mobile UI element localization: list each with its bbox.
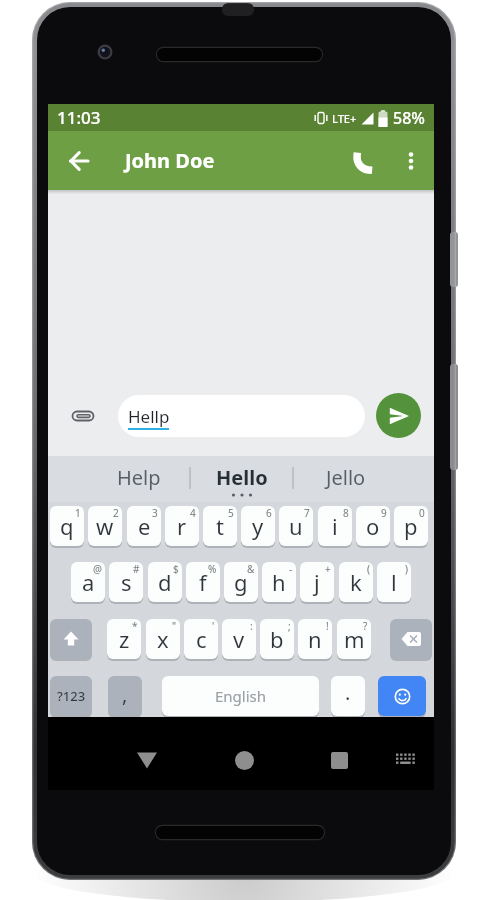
staticText: h bbox=[272, 567, 286, 597]
button[interactable]: p bbox=[394, 506, 428, 546]
staticText: ?123 bbox=[57, 687, 86, 705]
button[interactable] bbox=[123, 740, 171, 780]
staticText: i bbox=[332, 511, 338, 541]
button[interactable]: c bbox=[184, 619, 218, 659]
staticText: n bbox=[308, 624, 322, 654]
staticText: v bbox=[233, 624, 245, 654]
staticText: Hello bbox=[216, 464, 268, 491]
button[interactable]: e bbox=[127, 506, 161, 546]
button[interactable] bbox=[48, 394, 118, 438]
staticText: m bbox=[344, 624, 365, 654]
staticText: $ bbox=[173, 562, 179, 576]
button[interactable]: Jello bbox=[301, 456, 391, 498]
button[interactable]: ?123 bbox=[50, 676, 92, 716]
button[interactable]: Help bbox=[94, 456, 184, 498]
button[interactable]: j bbox=[300, 562, 334, 602]
staticText: q bbox=[60, 511, 74, 541]
button[interactable]: x bbox=[146, 619, 180, 659]
staticText: @ bbox=[93, 562, 102, 576]
staticText: c bbox=[196, 624, 207, 654]
staticText: 0 bbox=[419, 506, 425, 520]
button[interactable]: f bbox=[186, 562, 220, 602]
button[interactable]: k bbox=[339, 562, 373, 602]
staticText: z bbox=[119, 624, 130, 654]
staticText: 58% bbox=[393, 107, 425, 129]
button[interactable]: h bbox=[262, 562, 296, 602]
button[interactable] bbox=[50, 619, 92, 659]
button[interactable]: n bbox=[298, 619, 332, 659]
staticText: g bbox=[234, 567, 248, 597]
button[interactable] bbox=[378, 676, 426, 716]
button[interactable]: , bbox=[108, 676, 142, 716]
button[interactable]: m bbox=[337, 619, 371, 659]
button[interactable]: r bbox=[165, 506, 199, 546]
staticText: p bbox=[404, 511, 418, 541]
button[interactable]: v bbox=[222, 619, 256, 659]
button[interactable] bbox=[390, 619, 432, 659]
button[interactable]: d bbox=[148, 562, 182, 602]
button[interactable]: o bbox=[356, 506, 390, 546]
button[interactable] bbox=[344, 131, 388, 190]
button[interactable] bbox=[388, 131, 434, 190]
staticText: w bbox=[96, 511, 114, 541]
staticText: ! bbox=[326, 619, 329, 633]
staticText: # bbox=[133, 562, 140, 576]
staticText: : bbox=[250, 619, 253, 633]
staticText: a bbox=[82, 567, 95, 597]
button[interactable]: q bbox=[50, 506, 84, 546]
button[interactable]: English bbox=[162, 676, 319, 716]
button[interactable]: z bbox=[107, 619, 141, 659]
staticText: r bbox=[177, 511, 187, 541]
button[interactable] bbox=[220, 740, 268, 780]
staticText: b bbox=[270, 624, 284, 654]
staticText: y bbox=[252, 511, 264, 541]
button[interactable] bbox=[376, 393, 421, 438]
staticText: . bbox=[345, 679, 351, 706]
staticText: - bbox=[289, 562, 293, 576]
button[interactable] bbox=[315, 740, 363, 780]
staticText: j bbox=[314, 567, 320, 597]
staticText: Jello bbox=[326, 464, 366, 491]
button[interactable]: . bbox=[331, 676, 365, 716]
button[interactable] bbox=[391, 746, 419, 774]
button[interactable]: g bbox=[224, 562, 258, 602]
staticText: * bbox=[132, 619, 138, 633]
staticText: d bbox=[158, 567, 172, 597]
button[interactable] bbox=[48, 131, 110, 190]
staticText: l bbox=[391, 567, 397, 597]
staticText: u bbox=[289, 511, 303, 541]
staticText: 8 bbox=[343, 506, 349, 520]
staticText: John Doe bbox=[125, 147, 215, 174]
staticText: e bbox=[138, 511, 151, 541]
staticText: x bbox=[157, 624, 169, 654]
button[interactable]: w bbox=[88, 506, 122, 546]
button[interactable]: y bbox=[241, 506, 275, 546]
staticText: + bbox=[325, 562, 331, 576]
button[interactable]: l bbox=[377, 562, 411, 602]
staticText: % bbox=[208, 562, 217, 576]
staticText: 6 bbox=[266, 506, 272, 520]
staticText: s bbox=[121, 567, 132, 597]
button[interactable]: s bbox=[109, 562, 143, 602]
staticText: ; bbox=[288, 619, 291, 633]
button[interactable]: Hellp bbox=[118, 395, 365, 437]
staticText: ' bbox=[212, 619, 215, 633]
staticText: " bbox=[172, 619, 177, 633]
button[interactable]: i bbox=[318, 506, 352, 546]
button[interactable]: a bbox=[71, 562, 105, 602]
staticText: 1 bbox=[75, 506, 81, 520]
button[interactable]: Hello bbox=[197, 456, 287, 498]
staticText: ) bbox=[405, 562, 408, 576]
staticText: 7 bbox=[304, 506, 310, 520]
staticText: Help bbox=[117, 464, 161, 491]
staticText: t bbox=[216, 511, 224, 541]
button[interactable]: t bbox=[203, 506, 237, 546]
button[interactable]: u bbox=[279, 506, 313, 546]
staticText: ( bbox=[367, 562, 370, 576]
staticText: , bbox=[122, 681, 128, 708]
staticText: English bbox=[215, 686, 267, 706]
button[interactable]: b bbox=[260, 619, 294, 659]
staticText: & bbox=[247, 562, 255, 576]
staticText: f bbox=[199, 567, 207, 597]
staticText: ? bbox=[363, 619, 368, 633]
